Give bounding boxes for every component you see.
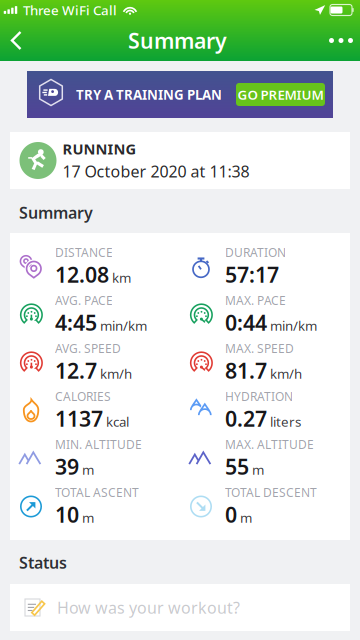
staticText: HYDRATION [225, 388, 293, 404]
staticText: m [82, 461, 94, 478]
staticText: AVG. PACE [55, 292, 113, 308]
staticText: MAX. PACE [225, 292, 286, 308]
staticText: km [112, 269, 131, 286]
staticText: GO PREMIUM [237, 86, 323, 103]
staticText: 4:45 [55, 308, 97, 337]
staticText: DISTANCE [55, 244, 113, 260]
staticText: 17 October 2020 at 11:38 [62, 161, 249, 182]
button[interactable]: More options [317, 20, 360, 61]
staticText: km/h [100, 365, 132, 382]
staticText: m [240, 509, 252, 526]
staticText: CALORIES [55, 388, 111, 404]
staticText: min/km [100, 317, 147, 334]
button[interactable]: How was your workout? [0, 584, 360, 631]
staticText: MIN. ALTITUDE [55, 436, 142, 452]
staticText: 57:17 [225, 260, 279, 289]
staticText: TOTAL ASCENT [55, 484, 139, 500]
staticText: RUNNING [62, 139, 136, 159]
staticText: m [252, 461, 264, 478]
button[interactable]: Back [0, 20, 38, 61]
staticText: 0:44 [225, 308, 267, 337]
staticText: 12.08 [55, 260, 109, 289]
button[interactable]: TRY A TRAINING PLAN [0, 71, 360, 118]
staticText: 1137 [55, 404, 103, 433]
staticText: Summary [128, 26, 227, 55]
staticText: How was your workout? [57, 597, 240, 618]
staticText: 81.7 [225, 356, 267, 385]
staticText: 10 [55, 500, 79, 529]
staticText: 0.27 [225, 404, 267, 433]
staticText: liters [270, 413, 301, 430]
staticText: min/km [270, 317, 317, 334]
staticText: MAX. SPEED [225, 340, 294, 356]
staticText: DURATION [225, 244, 286, 260]
staticText: 55 [225, 452, 249, 481]
staticText: TOTAL DESCENT [225, 484, 317, 500]
staticText: Three WiFi Call [23, 1, 117, 19]
staticText: km/h [270, 365, 302, 382]
staticText: Status [19, 552, 67, 573]
staticText: AVG. SPEED [55, 340, 121, 356]
staticText: Summary [19, 202, 93, 223]
staticText: 39 [55, 452, 79, 481]
staticText: 0 [225, 500, 237, 529]
staticText: 12.7 [55, 356, 97, 385]
staticText: m [82, 509, 94, 526]
staticText: MAX. ALTITUDE [225, 436, 314, 452]
staticText: TRY A TRAINING PLAN [76, 86, 222, 103]
staticText: kcal [106, 413, 129, 430]
